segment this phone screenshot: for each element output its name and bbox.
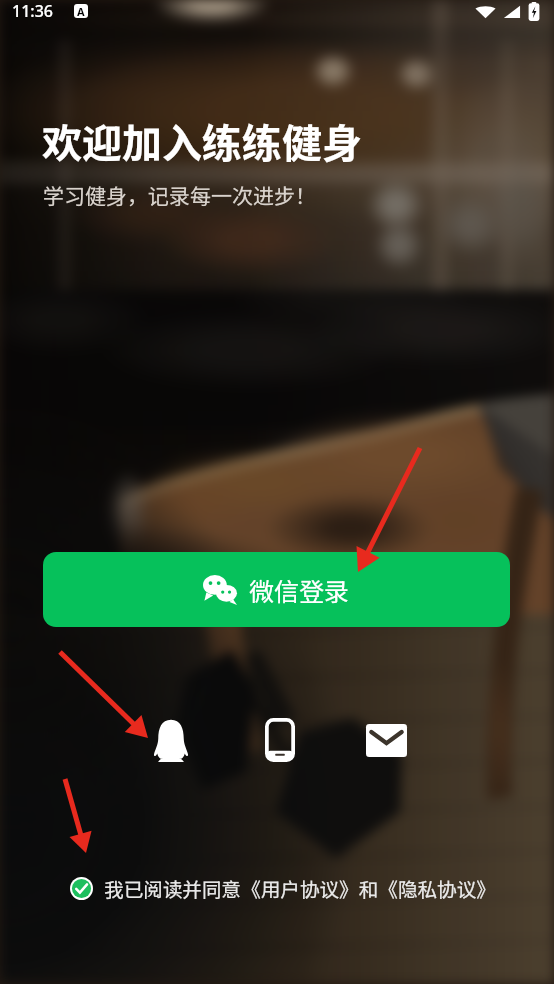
staticText: 学习健身，记录每一次进步！ — [43, 180, 316, 210]
button[interactable]: QQ 登录 — [145, 714, 197, 766]
staticText: 11:36 — [12, 0, 53, 22]
staticText: A — [77, 4, 85, 18]
staticText: 欢迎加入练练健身 — [42, 112, 362, 170]
staticText: 我已阅读并同意《用户协议》和《隐私协议》 — [104, 874, 496, 902]
button[interactable]: 邮箱登录 — [360, 714, 412, 766]
button[interactable]: 手机号登录 — [254, 714, 306, 766]
button[interactable]: 我已阅读并同意《用户协议》和《隐私协议》 — [68, 872, 498, 904]
staticText: 微信登录 — [249, 572, 350, 608]
button[interactable]: 微信登录 — [43, 552, 510, 627]
